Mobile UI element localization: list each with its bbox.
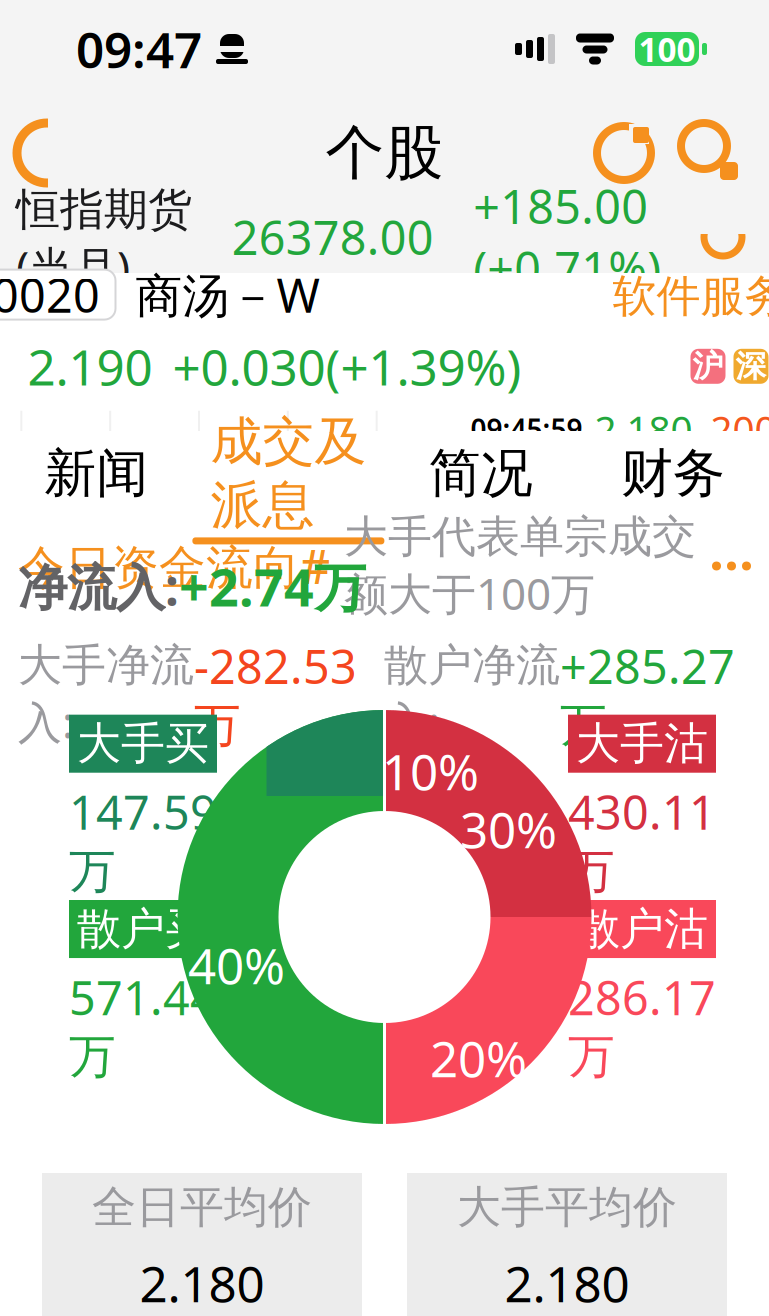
staticText: 100 <box>638 27 695 71</box>
staticText: 20% <box>430 1025 527 1091</box>
staticText: 恒指期货 (当月) <box>16 179 192 295</box>
staticText: 147.59万 <box>69 781 217 900</box>
button[interactable]: 软件服务> <box>612 265 769 324</box>
button[interactable]: 财务 <box>577 431 769 537</box>
staticText: 430.11万 <box>568 781 716 900</box>
staticText: -282.53万 <box>194 635 357 754</box>
staticText: 简况 <box>429 442 533 505</box>
button[interactable]: Back <box>4 105 90 201</box>
staticText: 大手沽 <box>576 717 708 771</box>
button[interactable]: 大手平均价 <box>407 1173 727 1316</box>
button[interactable]: Refresh <box>581 105 667 201</box>
staticText: +2.74万 <box>179 552 366 621</box>
staticText: 成交及派息 <box>210 410 366 537</box>
staticText: 个股 <box>325 117 443 189</box>
button[interactable]: Search <box>667 105 753 201</box>
staticText: 00020 <box>0 264 100 326</box>
staticText: 30% <box>460 796 557 862</box>
staticText: +0.030(+1.39%) <box>172 334 521 399</box>
staticText: 大手平均价 <box>457 1180 677 1234</box>
staticText: 大手代表单宗成交额大于100万 <box>344 510 696 622</box>
button[interactable]: 今日资金流向# <box>18 535 330 597</box>
button[interactable]: 简况 <box>384 431 577 537</box>
staticText: 2000 <box>710 403 769 454</box>
staticText: 深 <box>735 347 766 385</box>
button[interactable]: 全日平均价 <box>42 1173 362 1316</box>
staticText: 2.180 <box>139 1250 264 1316</box>
staticText: 散户买 <box>77 902 209 956</box>
button[interactable]: More info <box>696 561 751 570</box>
staticText: 2.180 <box>504 1250 629 1316</box>
staticText: 2.180 <box>594 403 692 454</box>
staticText: 2.190 <box>27 334 152 399</box>
staticText: 沪 <box>692 347 723 385</box>
staticText: 软件服务> <box>612 265 769 324</box>
staticText: 散户净流入: <box>384 638 560 751</box>
staticText: 财务 <box>621 442 725 505</box>
staticText: 571.44万 <box>69 966 217 1085</box>
staticText: 大手净流入: <box>18 638 194 751</box>
staticText: 26378.00 <box>232 206 434 268</box>
staticText: 09:45:59 <box>470 410 582 447</box>
staticText: +285.27万 <box>560 635 735 754</box>
staticText: 散户沽 <box>576 902 708 956</box>
staticText: 全日平均价 <box>92 1180 312 1234</box>
staticText: 大手买 <box>77 717 209 771</box>
button[interactable]: 成交及派息 <box>192 431 384 537</box>
staticText: 10% <box>382 738 479 804</box>
staticText: 新闻 <box>44 442 148 505</box>
staticText: 今日资金流向# <box>18 535 330 597</box>
staticText: 09:47 <box>76 16 202 82</box>
button[interactable]: 恒指期货 (当月) <box>0 201 769 273</box>
staticText: +185.00 (+0.71%) <box>473 175 661 299</box>
button[interactable]: 新闻 <box>0 431 192 537</box>
staticText: 40% <box>188 932 285 998</box>
staticText: 净流入: <box>18 554 179 619</box>
staticText: 286.17万 <box>568 966 716 1085</box>
staticText: 商汤－W <box>135 264 319 326</box>
